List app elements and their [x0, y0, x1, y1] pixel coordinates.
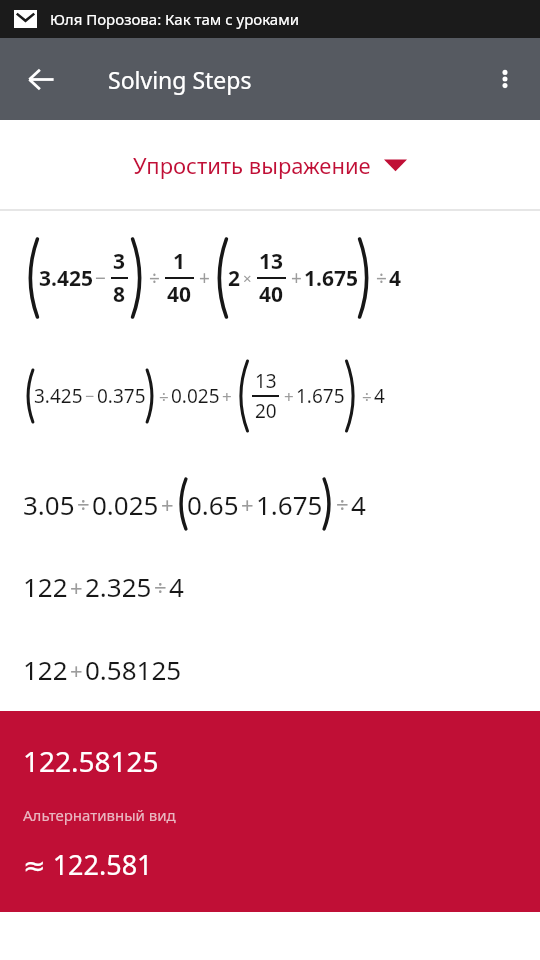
staticText: +: [70, 572, 83, 602]
staticText: ÷: [77, 489, 90, 519]
staticText: 0.58125: [85, 652, 182, 687]
staticText: 3: [113, 247, 126, 276]
staticText: 13: [259, 247, 284, 276]
staticText: 4: [374, 383, 385, 409]
staticText: 20: [255, 398, 277, 424]
staticText: 4: [169, 569, 184, 604]
staticText: 4: [389, 264, 402, 293]
staticText: Юля Порозова: Как там с уроками: [50, 9, 300, 29]
staticText: ÷: [362, 385, 372, 408]
staticText: 40: [167, 280, 192, 309]
staticText: 1.675: [256, 487, 323, 522]
staticText: +: [222, 385, 232, 408]
staticText: ≈ 122.581: [23, 846, 153, 883]
staticText: 40: [259, 280, 284, 309]
staticText: 2: [228, 264, 241, 293]
button[interactable]: Back: [12, 50, 70, 108]
staticText: 3.425: [39, 264, 93, 293]
staticText: +: [284, 385, 294, 408]
staticText: 1.675: [304, 264, 358, 293]
staticText: Альтернативный вид: [23, 805, 176, 825]
staticText: +: [70, 655, 83, 685]
staticText: 0.025: [171, 383, 220, 409]
staticText: 4: [351, 487, 366, 522]
staticText: −: [85, 385, 95, 407]
staticText: +: [161, 489, 174, 519]
staticText: ÷: [149, 265, 160, 291]
staticText: 1: [173, 247, 186, 276]
staticText: 3.05: [23, 487, 75, 522]
staticText: ÷: [376, 265, 387, 291]
staticText: 2.325: [85, 569, 152, 604]
staticText: 3.425: [34, 383, 83, 409]
staticText: +: [291, 265, 302, 291]
staticText: 0.375: [97, 383, 146, 409]
button[interactable]: More options: [478, 52, 532, 106]
staticText: ÷: [154, 572, 167, 602]
staticText: ÷: [159, 385, 169, 408]
staticText: Solving Steps: [108, 64, 252, 95]
button[interactable]: Упростить выражение: [0, 120, 540, 209]
staticText: 8: [113, 280, 126, 309]
staticText: ×: [243, 268, 252, 288]
staticText: 122: [23, 652, 68, 687]
staticText: +: [199, 265, 210, 291]
staticText: 1.675: [296, 383, 345, 409]
staticText: −: [95, 265, 106, 291]
staticText: +: [241, 489, 254, 519]
staticText: 0.025: [92, 487, 159, 522]
staticText: 122.58125: [23, 742, 159, 780]
staticText: Упростить выражение: [133, 150, 371, 180]
staticText: 0.65: [187, 487, 239, 522]
staticText: ÷: [336, 489, 349, 519]
staticText: 13: [255, 368, 277, 394]
other: New mail: [14, 10, 37, 28]
button[interactable]: 122.58125: [0, 711, 540, 912]
staticText: 122: [23, 569, 68, 604]
